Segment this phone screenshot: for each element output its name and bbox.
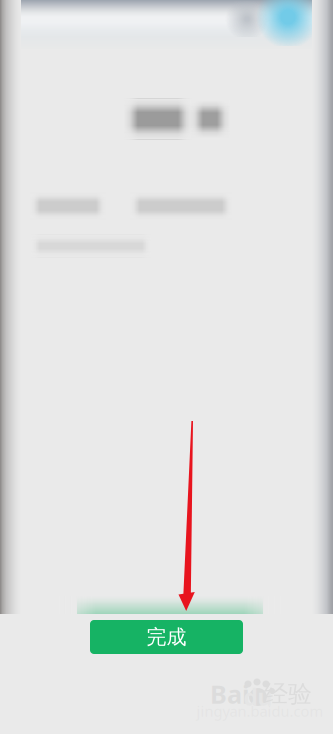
staticText: du <box>243 682 272 712</box>
button[interactable]: 完成 <box>90 620 243 654</box>
staticText: 经验 <box>264 679 312 709</box>
staticText: 完成 <box>146 625 186 649</box>
staticText: Bai <box>210 677 250 711</box>
staticText: jingyan.baidu.com <box>196 701 323 721</box>
